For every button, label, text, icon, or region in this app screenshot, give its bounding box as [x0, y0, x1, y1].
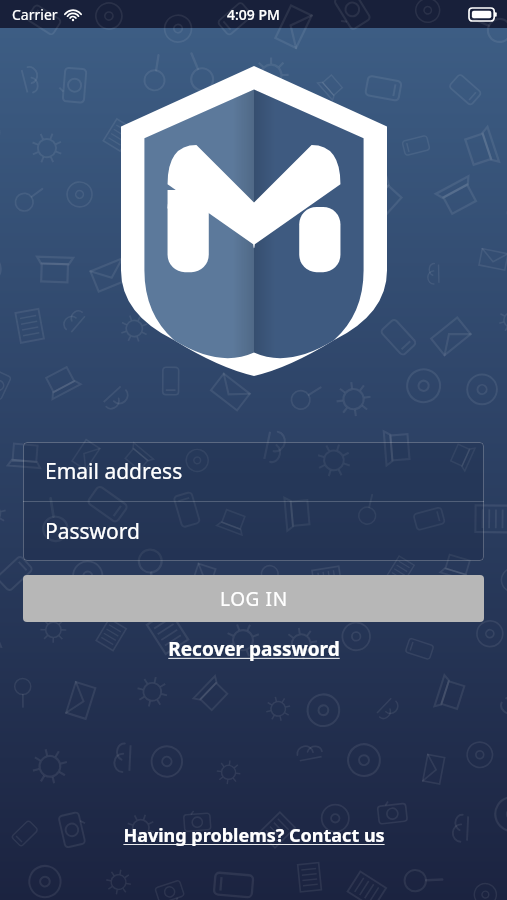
button[interactable]: Having problems? Contact us [115, 819, 393, 852]
staticText: Email address [45, 457, 183, 486]
staticText: Password [45, 517, 140, 546]
staticText: Recover password [168, 636, 340, 662]
staticText: Having problems? Contact us [123, 823, 385, 848]
staticText: 4:09 PM [227, 5, 280, 24]
other: App logo [121, 66, 387, 376]
staticText: Carrier [12, 5, 58, 24]
button[interactable]: Recover password [160, 632, 348, 666]
button[interactable]: Password [23, 502, 484, 561]
staticText: LOG IN [220, 586, 288, 612]
button[interactable]: LOG IN [23, 575, 484, 622]
button[interactable]: Email address [23, 442, 484, 501]
